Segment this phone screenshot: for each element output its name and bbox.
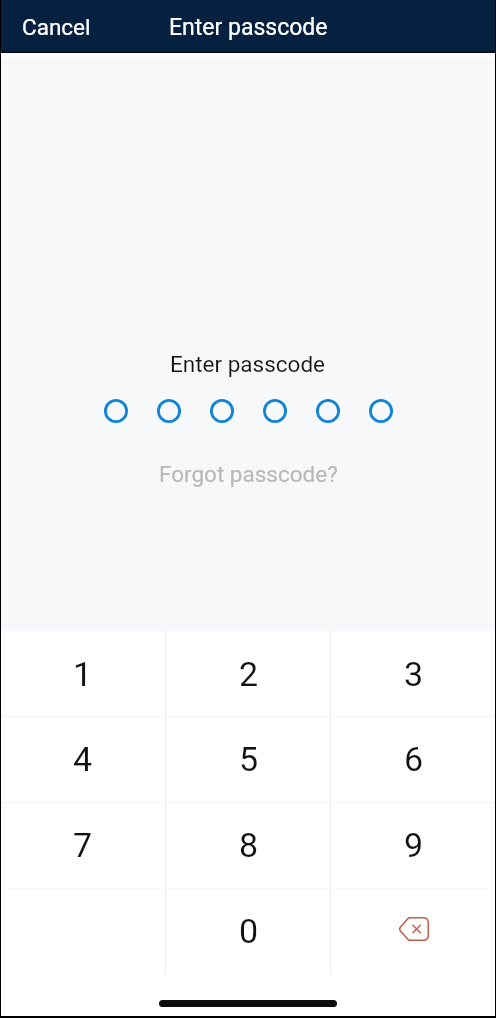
staticText: 5 (239, 739, 259, 779)
button[interactable]: Forgot passcode? (151, 459, 346, 489)
button[interactable]: 5 (166, 716, 331, 802)
staticText: 2 (239, 654, 259, 694)
staticText: 3 (404, 654, 424, 694)
staticText: Enter passcode (170, 351, 326, 377)
button[interactable]: 9 (331, 802, 496, 888)
button[interactable]: 4 (0, 716, 166, 802)
staticText: 8 (239, 825, 259, 865)
button[interactable]: 0 (166, 888, 331, 974)
staticText: 6 (404, 739, 424, 779)
staticText: 4 (73, 739, 93, 779)
staticText: Cancel (22, 14, 91, 40)
staticText: Forgot passcode? (159, 461, 338, 487)
button[interactable]: Delete last digit (331, 888, 496, 974)
staticText: 0 (239, 911, 259, 951)
staticText: 9 (404, 825, 424, 865)
button[interactable]: 6 (331, 716, 496, 802)
staticText: 7 (73, 825, 93, 865)
staticText: Enter passcode (169, 14, 328, 41)
button[interactable]: 7 (0, 802, 166, 888)
button[interactable]: 8 (166, 802, 331, 888)
staticText: 1 (73, 654, 93, 694)
button[interactable]: Cancel (14, 8, 99, 46)
button[interactable]: 3 (331, 631, 496, 716)
other: Passcode: 0 of 6 digits entered (104, 399, 393, 423)
button[interactable]: 2 (166, 631, 331, 716)
button[interactable]: 1 (0, 631, 166, 716)
